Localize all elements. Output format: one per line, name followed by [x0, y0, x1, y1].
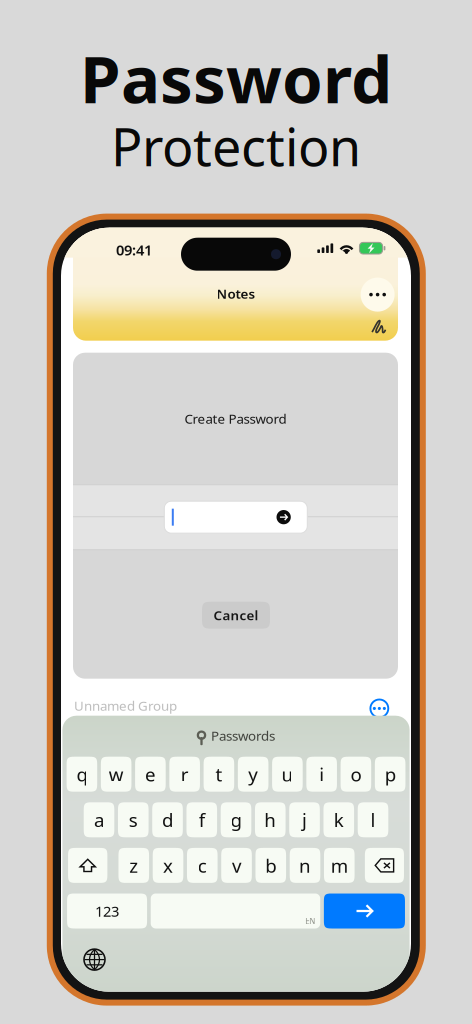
staticText: z	[129, 853, 138, 878]
staticText: a	[94, 807, 104, 832]
staticText: n	[299, 853, 311, 878]
button[interactable]: Submit password	[276, 510, 291, 524]
button[interactable]: Cancel	[202, 602, 270, 629]
staticText: w	[109, 762, 124, 787]
button[interactable]: i	[306, 757, 337, 792]
staticText: EN	[305, 916, 315, 926]
button[interactable]: q	[67, 757, 97, 792]
staticText: p	[385, 762, 396, 787]
button[interactable]: a	[84, 802, 114, 837]
button[interactable]: Markup	[371, 320, 386, 334]
staticText: s	[129, 807, 138, 832]
staticText: Passwords	[211, 727, 275, 744]
staticText: y	[248, 762, 258, 787]
button[interactable]: Go	[324, 893, 405, 928]
staticText: k	[334, 807, 344, 832]
staticText: v	[232, 853, 241, 878]
staticText: d	[162, 807, 173, 832]
button[interactable]: s	[118, 802, 149, 837]
staticText: u	[281, 762, 293, 787]
button[interactable]: z	[118, 848, 149, 883]
staticText: Protection	[111, 111, 361, 181]
button[interactable]: g	[221, 802, 251, 837]
staticText: Cancel	[213, 606, 258, 624]
staticText: g	[230, 807, 241, 832]
staticText: e	[145, 762, 156, 787]
staticText: Password	[80, 35, 392, 121]
button[interactable]: o	[341, 757, 371, 792]
staticText: t	[215, 762, 222, 787]
button[interactable]: h	[255, 802, 286, 837]
button[interactable]: x	[153, 848, 183, 883]
button[interactable]: t	[204, 757, 234, 792]
staticText: r	[181, 762, 189, 787]
button[interactable]: v	[221, 848, 252, 883]
button[interactable]: u	[272, 757, 303, 792]
button[interactable]: Group options	[369, 698, 389, 718]
staticText: x	[163, 853, 173, 878]
staticText: 123	[95, 901, 119, 921]
button[interactable]: More	[361, 278, 395, 312]
staticText: Notes	[216, 285, 255, 302]
button[interactable]: c	[187, 848, 218, 883]
button[interactable]: Next keyboard	[84, 949, 105, 970]
button[interactable]: Shift	[68, 848, 107, 883]
staticText: c	[198, 853, 207, 878]
button[interactable]: n	[290, 848, 320, 883]
button[interactable]: y	[238, 757, 268, 792]
button[interactable]: r	[169, 757, 200, 792]
button[interactable]: l	[358, 802, 388, 837]
staticText: o	[350, 762, 361, 787]
staticText: q	[76, 762, 87, 787]
button[interactable]: p	[375, 757, 405, 792]
button[interactable]: Delete	[365, 848, 404, 883]
button[interactable]: d	[152, 802, 183, 837]
staticText: Create Password	[184, 410, 286, 427]
button[interactable]: w	[101, 757, 131, 792]
staticText: b	[265, 853, 276, 878]
button[interactable]: f	[186, 802, 217, 837]
button[interactable]: e	[135, 757, 166, 792]
button[interactable]: b	[255, 848, 286, 883]
staticText: l	[370, 807, 375, 832]
staticText: Unnamed Group	[74, 697, 177, 714]
staticText: h	[264, 807, 276, 832]
button[interactable]: k	[323, 802, 354, 837]
staticText: i	[319, 762, 324, 787]
button[interactable]: 123	[67, 893, 147, 928]
staticText: 09:41	[116, 240, 152, 259]
staticText: j	[302, 807, 307, 832]
button[interactable]: j	[289, 802, 320, 837]
button[interactable]: Space	[151, 893, 320, 928]
button[interactable]: m	[324, 848, 355, 883]
staticText: m	[331, 853, 348, 878]
staticText: f	[199, 807, 205, 832]
